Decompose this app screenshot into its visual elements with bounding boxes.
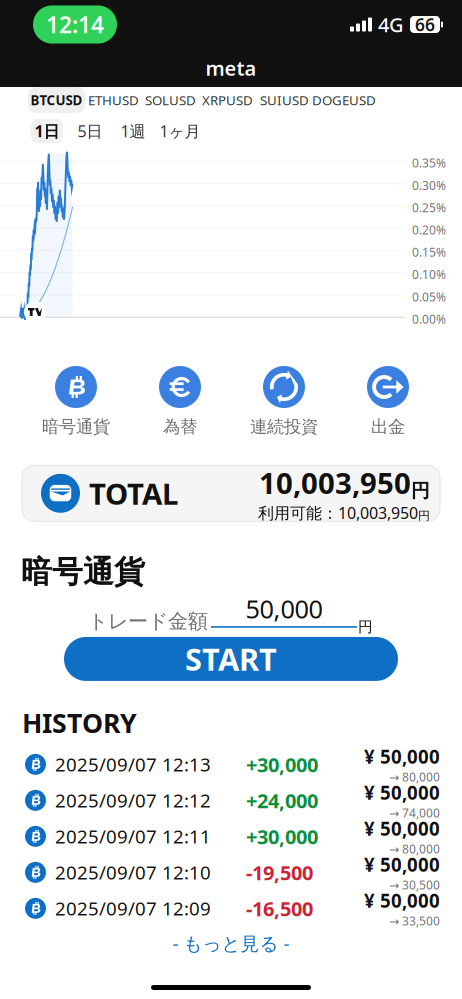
button[interactable]: 2025/09/07 12:09: [0, 890, 462, 926]
staticText: 連続投資: [250, 416, 318, 437]
staticText: 1日: [34, 120, 59, 142]
button[interactable]: DOGEUSD: [313, 87, 375, 113]
button[interactable]: XRPUSD: [199, 87, 256, 113]
staticText: meta: [205, 55, 256, 81]
staticText: TOTAL: [89, 474, 178, 513]
staticText: 0.30%: [412, 177, 446, 193]
staticText: ¥ 50,000: [364, 744, 440, 769]
staticText: 利用可能：10,003,950: [258, 502, 418, 523]
staticText: 66: [415, 13, 435, 36]
staticText: 円: [418, 509, 430, 523]
button[interactable]: 5日: [74, 119, 106, 143]
staticText: 10,003,950: [259, 463, 411, 502]
staticText: 暗号通貨: [42, 416, 110, 437]
staticText: +30,000: [246, 751, 318, 778]
staticText: XRPUSD: [202, 91, 253, 109]
staticText: 2025/09/07 12:11: [55, 824, 211, 849]
staticText: ¥ 50,000: [364, 852, 440, 877]
button[interactable]: 暗号通貨: [42, 366, 110, 437]
staticText: DOGEUSD: [312, 91, 376, 109]
button[interactable]: 1ヶ月: [160, 119, 200, 143]
staticText: → 74,000: [389, 805, 440, 821]
staticText: +24,000: [246, 787, 318, 814]
button[interactable]: BTCUSD: [28, 87, 85, 113]
staticText: 5日: [77, 120, 102, 142]
staticText: 4G: [378, 11, 404, 38]
staticText: 出金: [371, 416, 405, 437]
staticText: 2025/09/07 12:13: [55, 752, 211, 777]
staticText: 0.15%: [412, 244, 446, 260]
staticText: +30,000: [246, 823, 318, 850]
staticText: SUIUSD: [260, 91, 309, 109]
staticText: ¥ 50,000: [364, 816, 440, 841]
staticText: → 33,500: [389, 913, 440, 929]
staticText: 0.20%: [412, 222, 446, 238]
staticText: ¥ 50,000: [364, 780, 440, 805]
staticText: -16,500: [246, 895, 313, 922]
button[interactable]: 出金: [367, 366, 409, 437]
staticText: → 30,500: [389, 877, 440, 893]
staticText: → 80,000: [389, 769, 440, 785]
staticText: ETHUSD: [88, 91, 139, 109]
staticText: 0.25%: [412, 200, 446, 215]
staticText: 0.05%: [412, 289, 446, 305]
staticText: 円: [358, 618, 373, 636]
staticText: 0.00%: [412, 311, 446, 327]
staticText: 12:14: [46, 9, 104, 39]
staticText: BTCUSD: [30, 91, 82, 109]
staticText: 2025/09/07 12:09: [55, 896, 211, 921]
staticText: 2025/09/07 12:12: [55, 788, 211, 813]
staticText: → 80,000: [389, 841, 440, 857]
button[interactable]: 2025/09/07 12:13: [0, 746, 462, 782]
button[interactable]: - もっと見る -: [0, 928, 462, 958]
button[interactable]: 連続投資: [250, 366, 318, 437]
staticText: - もっと見る -: [172, 931, 289, 956]
button[interactable]: START: [64, 637, 398, 681]
button[interactable]: 1週: [117, 119, 149, 143]
staticText: 0.35%: [412, 155, 446, 171]
staticText: 0.10%: [412, 266, 446, 282]
button[interactable]: ETHUSD: [85, 87, 142, 113]
staticText: SOLUSD: [145, 91, 196, 109]
button[interactable]: 1日: [31, 119, 63, 143]
staticText: 50,000: [245, 592, 322, 626]
button[interactable]: 2025/09/07 12:12: [0, 782, 462, 818]
staticText: 暗号通貨: [21, 553, 145, 591]
button[interactable]: SOLUSD: [142, 87, 199, 113]
button[interactable]: SUIUSD: [256, 87, 313, 113]
staticText: トレード金額: [88, 609, 208, 634]
staticText: 1週: [120, 120, 145, 142]
staticText: ¥ 50,000: [364, 888, 440, 913]
staticText: -19,500: [246, 859, 313, 886]
button[interactable]: 2025/09/07 12:10: [0, 854, 462, 890]
staticText: HISTORY: [22, 705, 137, 740]
staticText: 1ヶ月: [159, 120, 200, 142]
button[interactable]: 為替: [159, 366, 201, 437]
staticText: 2025/09/07 12:10: [55, 860, 211, 885]
staticText: START: [185, 639, 277, 679]
button[interactable]: 2025/09/07 12:11: [0, 818, 462, 854]
staticText: 為替: [163, 416, 197, 437]
staticText: 円: [411, 479, 430, 502]
